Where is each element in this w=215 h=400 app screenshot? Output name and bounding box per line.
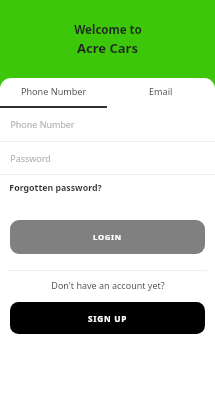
- button[interactable]: SIGN UP: [10, 302, 205, 334]
- button[interactable]: Password: [10, 148, 130, 168]
- staticText: Phone Number: [10, 118, 75, 130]
- staticText: Password: [10, 152, 51, 164]
- button[interactable]: Email: [107, 78, 215, 110]
- staticText: Acre Cars: [77, 39, 138, 57]
- button[interactable]: Forgotten password?: [9, 178, 114, 198]
- staticText: Welcome to: [74, 22, 142, 38]
- staticText: LOGIN: [93, 232, 122, 243]
- staticText: Forgotten password?: [9, 182, 102, 194]
- staticText: Email: [149, 85, 173, 97]
- staticText: Don't have an account yet?: [51, 279, 165, 291]
- button[interactable]: Phone Number: [0, 78, 107, 110]
- button[interactable]: Phone Number: [10, 114, 130, 134]
- staticText: Phone Number: [21, 85, 87, 97]
- button[interactable]: LOGIN: [10, 220, 205, 254]
- staticText: SIGN UP: [88, 313, 128, 324]
